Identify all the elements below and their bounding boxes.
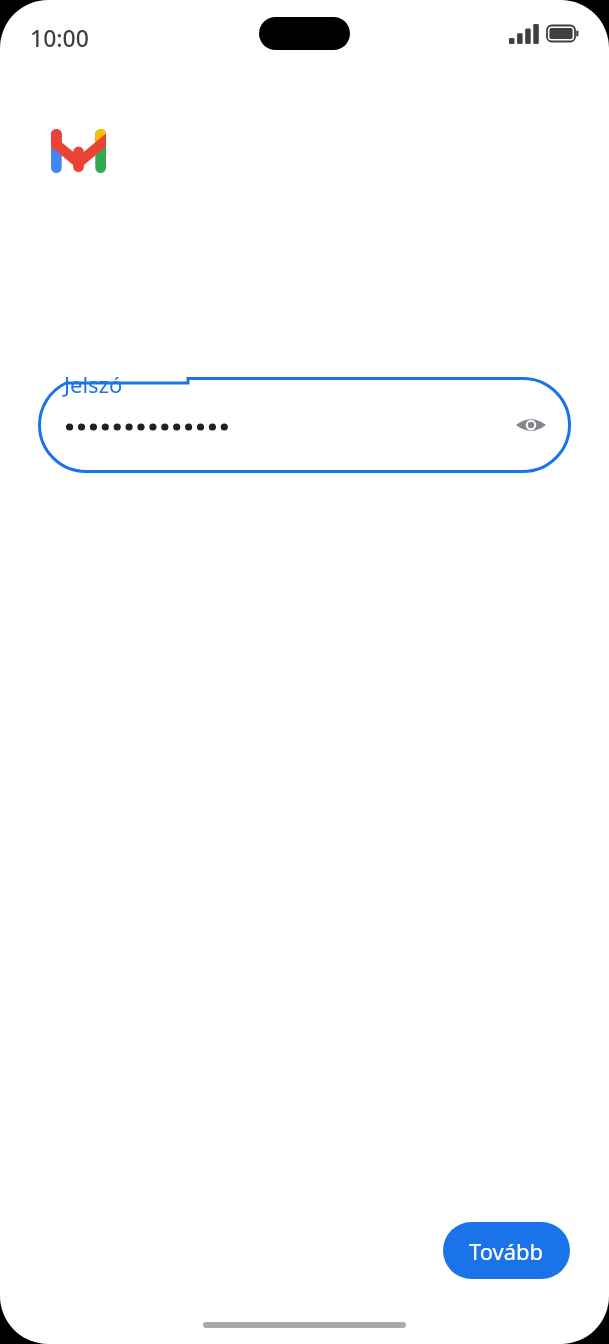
staticText: Jelszó: [64, 369, 123, 399]
button[interactable]: Tovább: [443, 1222, 570, 1279]
staticText: Tovább: [469, 1236, 544, 1266]
button[interactable]: Jelszó megjelenítése: [509, 403, 553, 447]
staticText: 10:00: [30, 22, 89, 53]
button[interactable]: Jelszó megjelenítése: [38, 377, 571, 473]
